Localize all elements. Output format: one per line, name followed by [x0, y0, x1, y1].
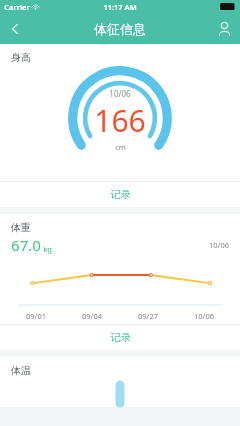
button[interactable]: 记录: [0, 325, 240, 350]
staticText: 166: [94, 100, 146, 141]
button[interactable]: Back: [0, 14, 30, 44]
staticText: 记录: [110, 188, 131, 201]
staticText: 身高: [11, 51, 31, 64]
button[interactable]: 记录: [0, 182, 240, 207]
staticText: 09/27: [138, 311, 158, 321]
staticText: Carrier: [4, 2, 30, 12]
staticText: 10/06: [209, 240, 229, 250]
staticText: 记录: [110, 331, 131, 344]
staticText: 体温: [11, 364, 31, 377]
button[interactable]: Profile: [209, 13, 240, 44]
staticText: cm: [115, 142, 126, 152]
staticText: 10/06: [109, 88, 131, 99]
staticText: 09/01: [26, 311, 46, 321]
staticText: 09/04: [82, 311, 102, 321]
staticText: 体征信息: [94, 21, 146, 37]
staticText: kg: [43, 244, 52, 254]
staticText: 体重: [11, 221, 31, 234]
staticText: 67.0: [11, 235, 41, 255]
staticText: 11:17 AM: [103, 2, 137, 12]
staticText: 10/06: [194, 311, 214, 321]
